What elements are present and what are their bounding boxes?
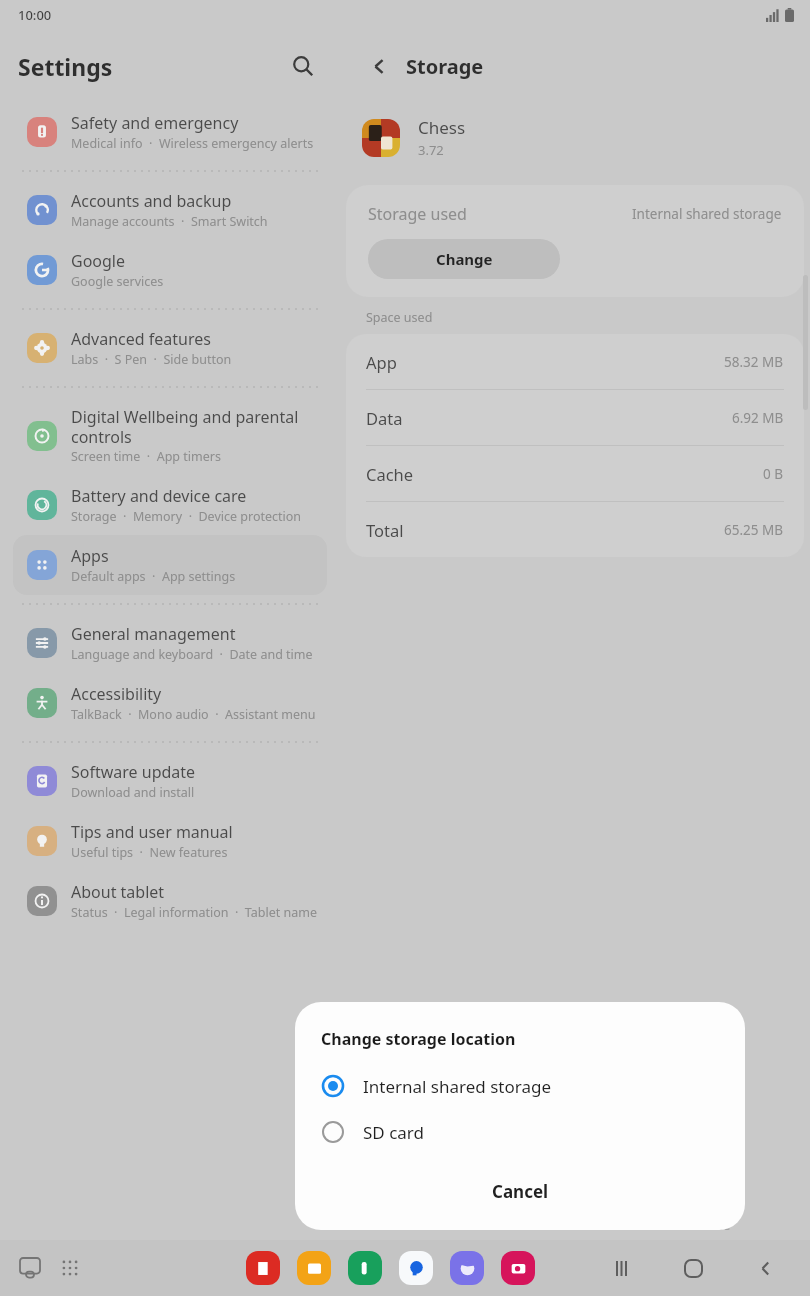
staticText: 0 B: [763, 465, 784, 483]
staticText: Google services: [71, 273, 164, 290]
staticText: Cancel: [492, 1180, 549, 1203]
staticText: Software update: [71, 761, 196, 783]
staticText: Labs · S Pen · Side button: [71, 351, 232, 368]
staticText: 3.72: [418, 141, 444, 159]
staticText: TalkBack · Mono audio · Assistant menu: [71, 706, 316, 723]
staticText: Cache: [366, 463, 414, 485]
staticText: Storage · Memory · Device protection: [71, 508, 302, 525]
button[interactable]: Apps: [13, 535, 327, 595]
staticText: Safety and emergency: [71, 112, 239, 134]
button[interactable]: Digital Wellbeing and parental controls: [13, 396, 327, 475]
button[interactable]: Search: [282, 45, 324, 87]
button[interactable]: Back: [746, 1249, 784, 1287]
button[interactable]: Cancel: [295, 1168, 745, 1214]
staticText: Storage used: [368, 203, 467, 225]
button[interactable]: Recent apps panel: [10, 1248, 50, 1288]
staticText: Tips and user manual: [71, 821, 233, 843]
staticText: 6.92 MB: [732, 409, 784, 427]
staticText: Useful tips · New features: [71, 844, 228, 861]
button[interactable]: Recents: [602, 1249, 640, 1287]
button[interactable]: Battery and device care: [13, 475, 327, 535]
staticText: About tablet: [71, 881, 165, 903]
button[interactable]: Back: [362, 49, 396, 83]
staticText: Internal shared storage: [632, 205, 782, 223]
staticText: 65.25 MB: [724, 521, 784, 539]
staticText: Settings: [18, 51, 113, 82]
button[interactable]: messages: [399, 1251, 433, 1285]
staticText: Battery and device care: [71, 485, 247, 507]
staticText: Storage: [406, 53, 484, 80]
button[interactable]: Change: [368, 239, 560, 279]
staticText: Change: [436, 249, 493, 269]
staticText: Download and install: [71, 784, 195, 801]
staticText: Google: [71, 250, 126, 272]
staticText: Status · Legal information · Tablet name: [71, 904, 317, 921]
staticText: Chess: [418, 116, 466, 139]
staticText: Apps: [71, 545, 109, 567]
button[interactable]: General management: [13, 613, 327, 673]
staticText: Digital Wellbeing and parental controls: [71, 406, 319, 447]
staticText: SD card: [363, 1121, 424, 1144]
staticText: General management: [71, 623, 236, 645]
staticText: Internal shared storage: [363, 1075, 552, 1098]
staticText: Change storage location: [321, 1028, 516, 1050]
button[interactable]: Total: [346, 502, 804, 557]
staticText: Data: [366, 407, 403, 429]
staticText: Default apps · App settings: [71, 568, 236, 585]
button[interactable]: Home: [674, 1249, 712, 1287]
button[interactable]: SD card: [295, 1114, 745, 1150]
staticText: Clear cache: [655, 1215, 731, 1234]
staticText: Space used: [366, 309, 433, 326]
button[interactable]: internet: [450, 1251, 484, 1285]
button[interactable]: Advanced features: [13, 318, 327, 378]
button[interactable]: Tips and user manual: [13, 811, 327, 871]
button[interactable]: All apps: [50, 1248, 90, 1288]
button[interactable]: Safety and emergency: [13, 102, 327, 162]
button[interactable]: Data: [346, 390, 804, 446]
staticText: App: [366, 351, 397, 373]
button[interactable]: About tablet: [13, 871, 327, 931]
button[interactable]: camera: [501, 1251, 535, 1285]
staticText: Medical info · Wireless emergency alerts: [71, 135, 314, 152]
staticText: Advanced features: [71, 328, 211, 350]
button[interactable]: phone: [348, 1251, 382, 1285]
button[interactable]: Software update: [13, 751, 327, 811]
button[interactable]: Cache: [346, 446, 804, 502]
staticText: Clear data: [424, 1215, 492, 1234]
staticText: Accounts and backup: [71, 190, 232, 212]
button[interactable]: files: [297, 1251, 331, 1285]
button[interactable]: flipboard: [246, 1251, 280, 1285]
staticText: Total: [366, 519, 404, 541]
button[interactable]: App: [346, 334, 804, 390]
button[interactable]: Internal shared storage: [295, 1068, 745, 1104]
staticText: Manage accounts · Smart Switch: [71, 213, 268, 230]
staticText: 58.32 MB: [724, 353, 784, 371]
staticText: Screen time · App timers: [71, 448, 221, 465]
staticText: Language and keyboard · Date and time: [71, 646, 313, 663]
button[interactable]: Accessibility: [13, 673, 327, 733]
staticText: 10:00: [18, 6, 52, 24]
staticText: Accessibility: [71, 683, 162, 705]
button[interactable]: Accounts and backup: [13, 180, 327, 240]
button[interactable]: Google: [13, 240, 327, 300]
